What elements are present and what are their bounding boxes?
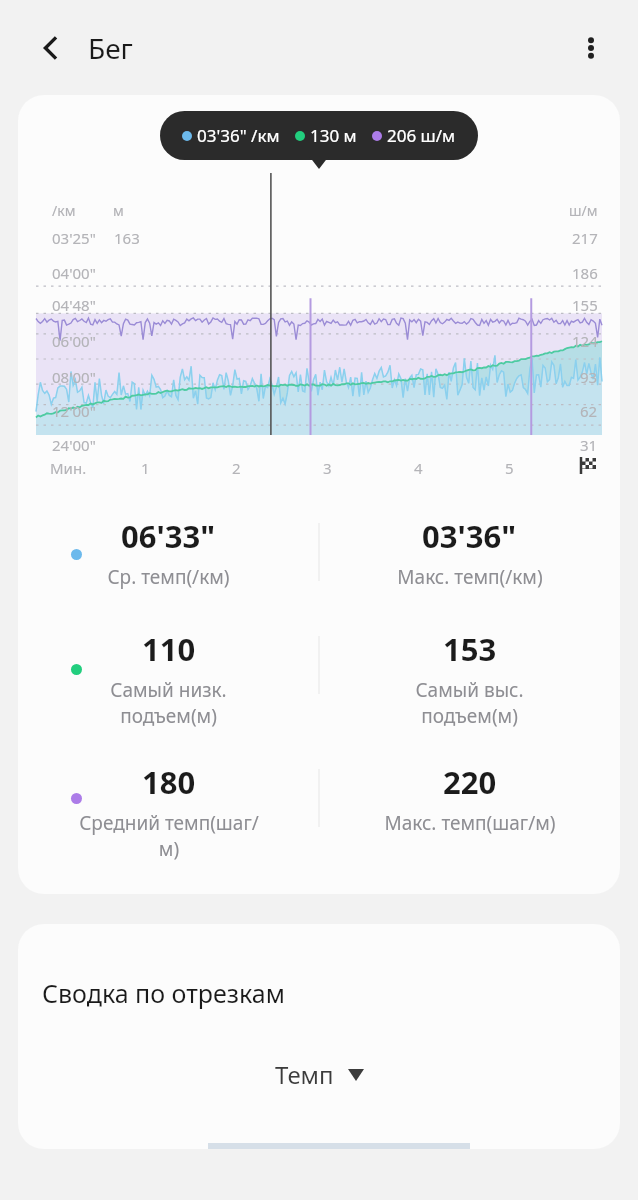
staticText: /км [52, 201, 76, 220]
staticText: 110 [142, 628, 196, 670]
button[interactable]: More options [564, 21, 618, 75]
staticText: 03'36" [422, 515, 517, 557]
button[interactable]: Темп [263, 1052, 376, 1097]
staticText: Сводка по отрезкам [42, 976, 285, 1010]
button[interactable]: 06'33" [18, 515, 319, 590]
staticText: Макс. темп(шаг/м) [384, 810, 556, 836]
staticText: 06'00" [52, 331, 96, 351]
staticText: 180 [142, 761, 196, 803]
staticText: ш/м [569, 201, 598, 220]
staticText: Темп [275, 1058, 334, 1091]
staticText: Бег [88, 29, 133, 67]
staticText: 124 [572, 331, 598, 351]
staticText: 4 [414, 458, 423, 478]
staticText: 217 [572, 228, 598, 248]
button[interactable]: 153 [319, 628, 620, 729]
staticText: 206 ш/м [387, 124, 456, 147]
staticText: Средний темп(шаг/ м) [79, 810, 259, 862]
staticText: 163 [114, 228, 140, 248]
staticText: 62 [580, 401, 598, 421]
button[interactable]: 03'36" [319, 515, 620, 590]
staticText: 155 [572, 295, 598, 315]
staticText: м [113, 201, 124, 220]
staticText: 08'00" [52, 367, 96, 387]
staticText: Самый низк. подъем(м) [110, 677, 227, 729]
button[interactable]: Back [24, 21, 78, 75]
staticText: 1 [141, 458, 150, 478]
staticText: 5 [505, 458, 514, 478]
staticText: 04'00" [52, 263, 96, 283]
staticText: 06'33" [121, 515, 216, 557]
staticText: 220 [443, 761, 497, 803]
staticText: 24'00" [52, 435, 96, 455]
staticText: 3 [323, 458, 332, 478]
staticText: 12'00" [52, 401, 96, 421]
staticText: 93 [580, 367, 598, 387]
button[interactable]: 180 [18, 761, 319, 862]
button[interactable]: 220 [319, 761, 620, 836]
staticText: Мин. [50, 458, 87, 478]
staticText: 186 [572, 263, 598, 283]
staticText: 153 [443, 628, 497, 670]
staticText: 03'25" [52, 228, 96, 248]
staticText: 31 [580, 435, 598, 455]
staticText: Макс. темп(/км) [397, 564, 543, 590]
staticText: 03'36" /км [197, 124, 280, 147]
staticText: Ср. темп(/км) [107, 564, 230, 590]
button[interactable]: 110 [18, 628, 319, 729]
staticText: Самый выс. подъем(м) [415, 677, 524, 729]
staticText: 130 м [310, 124, 357, 147]
staticText: 2 [232, 458, 241, 478]
staticText: 04'48" [52, 295, 96, 315]
